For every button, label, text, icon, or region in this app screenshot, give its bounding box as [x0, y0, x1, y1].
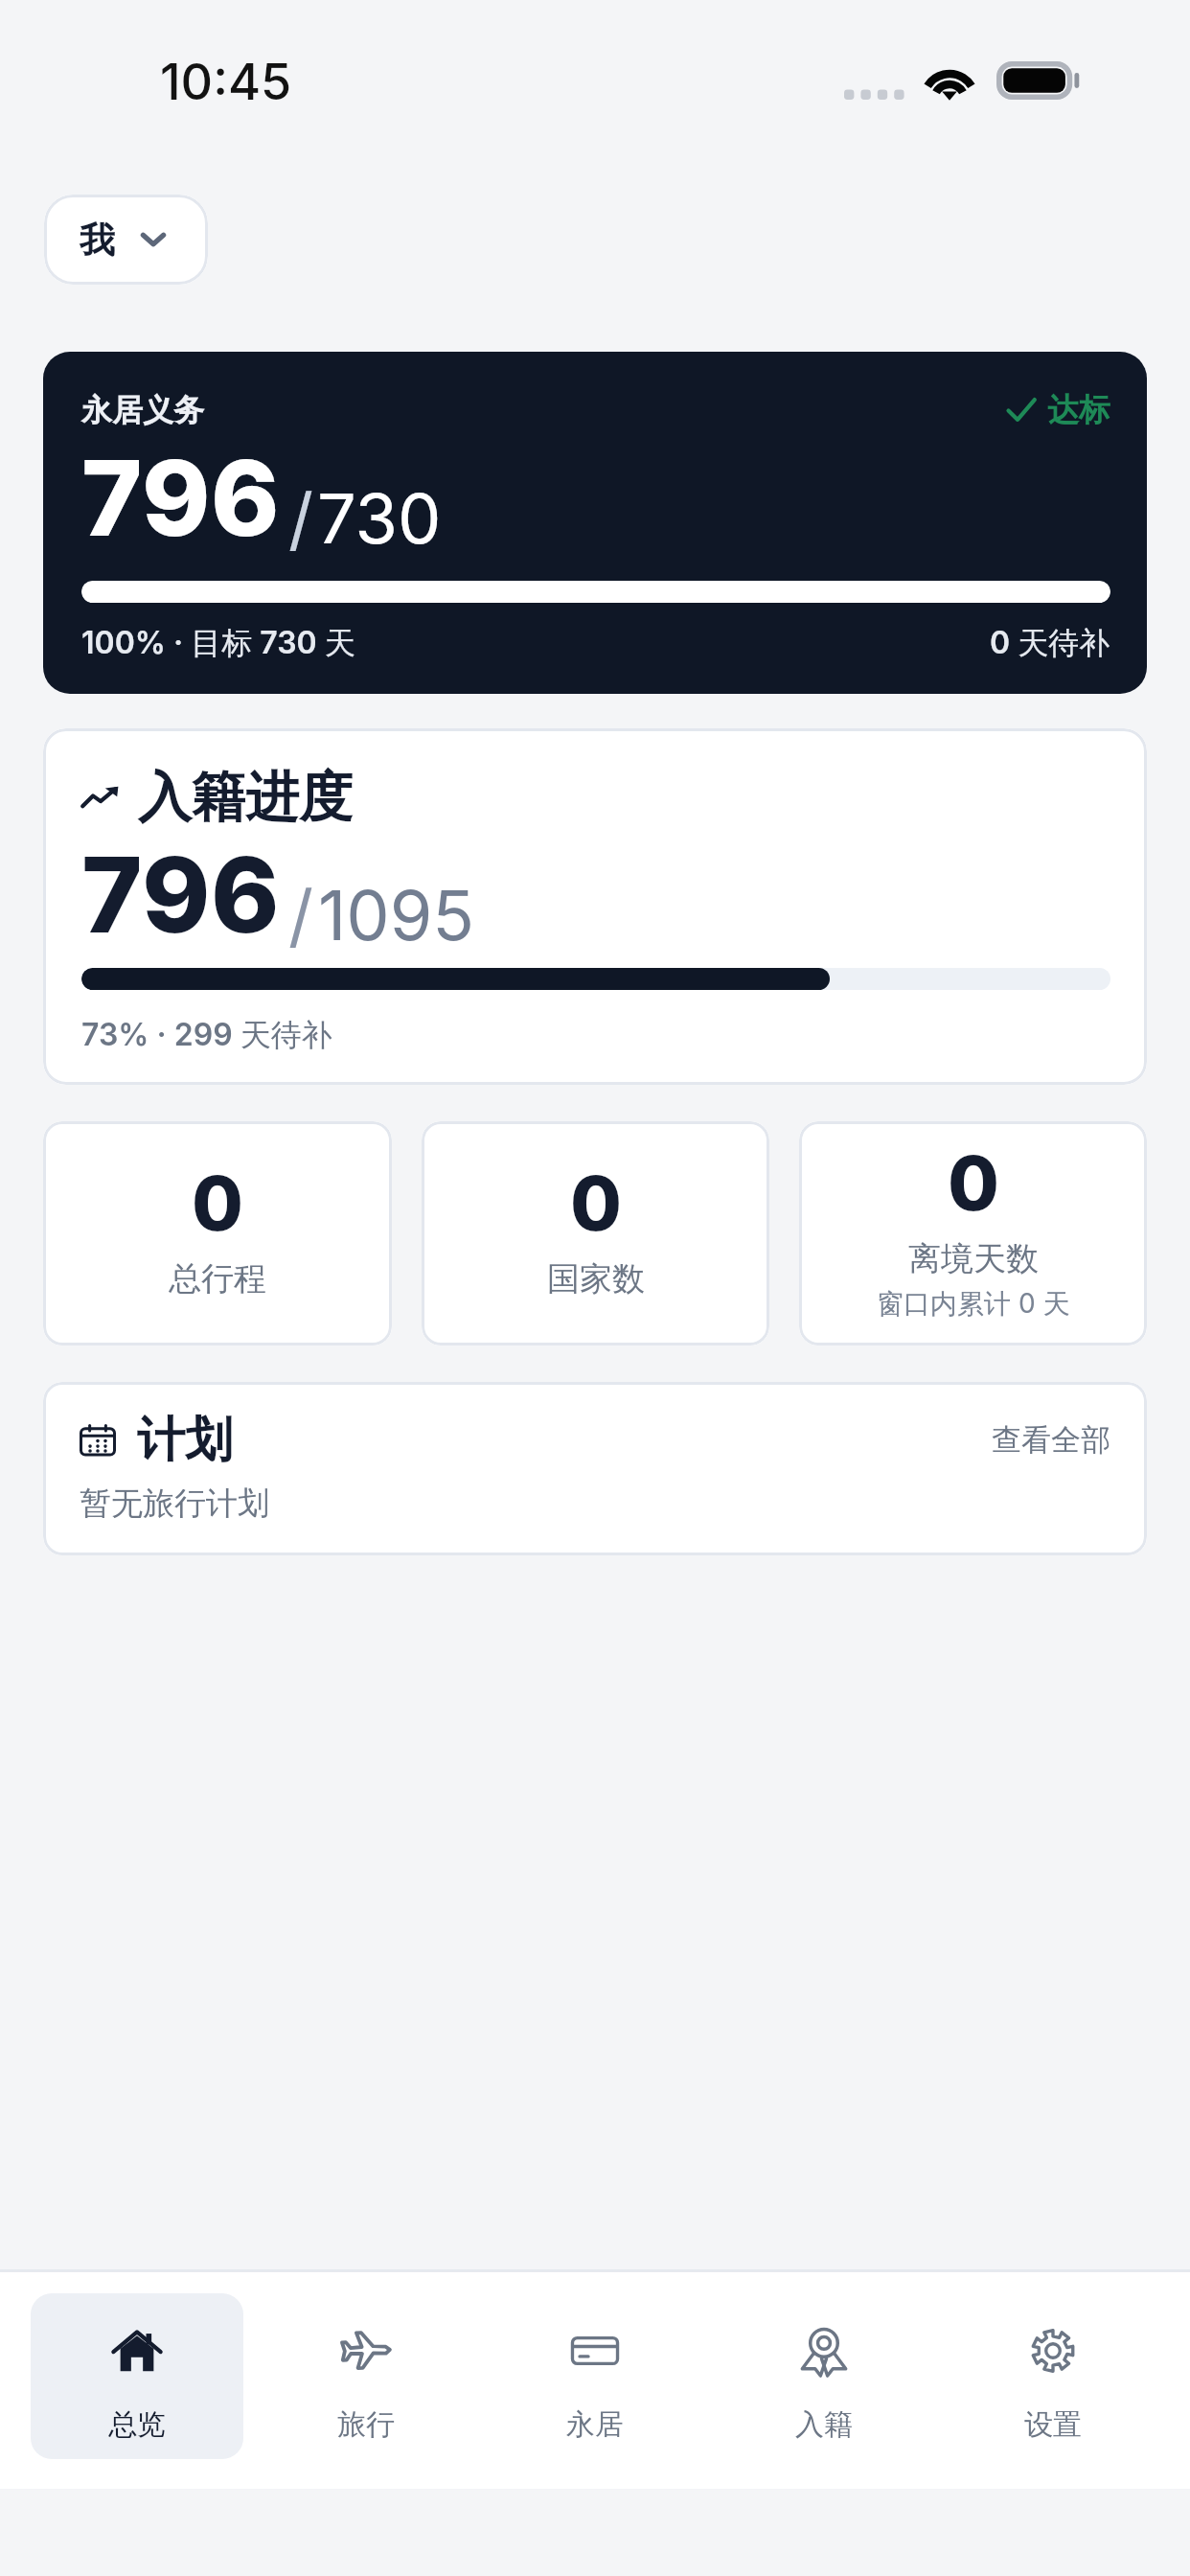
staticText: 入籍进度 [138, 764, 353, 832]
staticText: 国家数 [547, 1258, 645, 1299]
button[interactable]: 设置 [947, 2293, 1159, 2459]
staticText: 窗口内累计 0 天 [877, 1287, 1070, 1321]
button[interactable]: 旅行 [260, 2293, 472, 2459]
staticText: 73% · 299 天待补 [81, 1016, 332, 1055]
staticText: 100% · 目标 730 天 [81, 624, 355, 663]
button[interactable]: 0 [422, 1121, 769, 1345]
staticText: 永居 [566, 2406, 624, 2443]
staticText: 设置 [1024, 2406, 1082, 2443]
button[interactable]: 永居义务 [43, 352, 1147, 694]
staticText: 796 [81, 435, 281, 561]
staticText: 0 天待补 [990, 624, 1110, 663]
staticText: / [288, 873, 313, 956]
button[interactable]: 入籍进度 [43, 728, 1147, 1085]
staticText: 达标 [1047, 390, 1110, 430]
staticText: 永居义务 [81, 391, 204, 429]
staticText: 730 [317, 476, 442, 560]
staticText: 1095 [318, 873, 475, 956]
button[interactable]: 0 [43, 1121, 392, 1345]
button[interactable]: 永居 [489, 2293, 701, 2459]
button[interactable]: 查看全部 [992, 1421, 1110, 1459]
button[interactable]: 总览 [31, 2293, 243, 2459]
staticText: 暂无旅行计划 [80, 1483, 269, 1524]
button[interactable]: 我 · 切换档案 [44, 195, 208, 285]
staticText: 0 [948, 1138, 999, 1228]
button[interactable]: 0 [799, 1121, 1147, 1345]
staticText: 离境天数 [908, 1238, 1039, 1279]
staticText: 总行程 [169, 1258, 266, 1299]
staticText: 10:45 [160, 52, 292, 112]
staticText: 我 [80, 218, 115, 263]
staticText: 旅行 [337, 2406, 395, 2443]
button[interactable]: 入籍 [718, 2293, 930, 2459]
staticText: / [288, 476, 313, 560]
staticText: 计划 [137, 1410, 233, 1470]
staticText: 796 [81, 832, 281, 957]
staticText: 总览 [108, 2406, 166, 2443]
staticText: 0 [570, 1158, 622, 1248]
button[interactable]: 计划 [43, 1382, 1147, 1555]
staticText: 入籍 [795, 2406, 853, 2443]
staticText: 0 [192, 1158, 243, 1248]
